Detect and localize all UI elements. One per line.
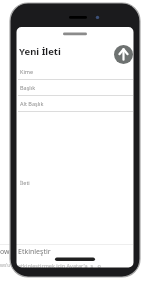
staticText: İleti: [20, 179, 30, 186]
staticText: ow'u: [0, 247, 16, 257]
staticText: Yeni İleti: [19, 45, 61, 58]
staticText: Alt Başlık: [20, 100, 44, 107]
staticText: Kime: [20, 68, 34, 75]
button[interactable]: Başlık: [17, 80, 133, 95]
staticText: Etkinleştir: [18, 247, 51, 257]
button[interactable]: [114, 45, 133, 64]
button[interactable]: Alt Başlık: [17, 96, 133, 111]
staticText: Başlık: [20, 84, 36, 91]
staticText: etkinleştirmek için Avatar'a s o: [18, 262, 101, 269]
button[interactable]: Kime: [17, 63, 133, 79]
staticText: ws'u: [0, 262, 11, 269]
